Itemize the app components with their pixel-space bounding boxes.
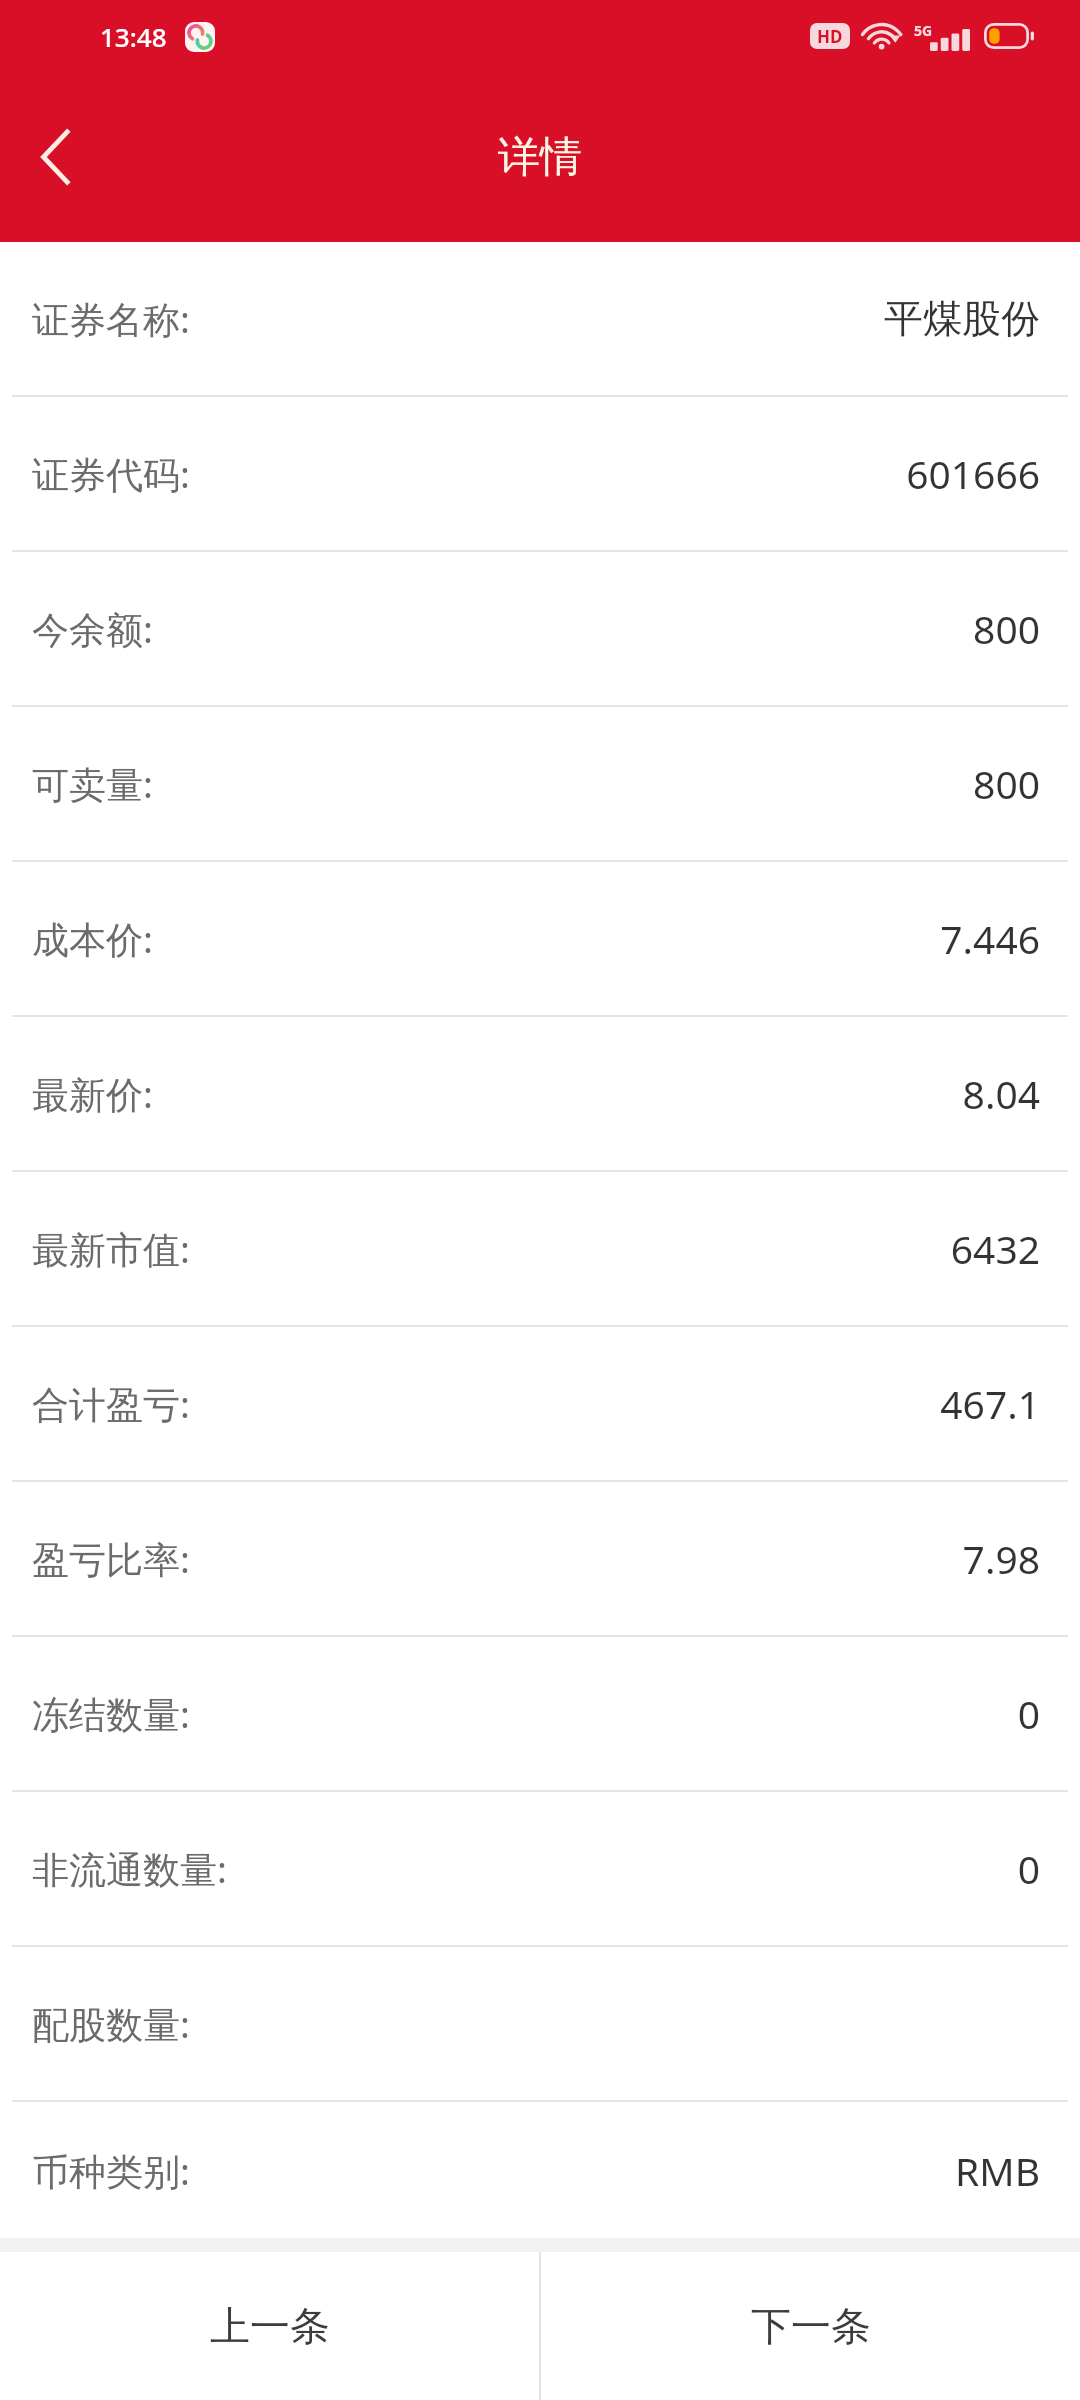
staticText: 非流通数量: bbox=[32, 1843, 227, 1894]
staticText: 13:48 bbox=[100, 19, 167, 54]
staticText: 成本价: bbox=[32, 913, 153, 964]
button[interactable]: 今余额: bbox=[0, 552, 1080, 705]
staticText: 盈亏比率: bbox=[32, 1533, 190, 1584]
button[interactable]: 盈亏比率: bbox=[0, 1482, 1080, 1635]
staticText: 467.1 bbox=[940, 1377, 1040, 1430]
button[interactable]: 证券代码: bbox=[0, 397, 1080, 550]
staticText: HD bbox=[817, 25, 843, 48]
button[interactable]: 下一条 bbox=[541, 2252, 1080, 2400]
staticText: 可卖量: bbox=[32, 758, 153, 809]
button[interactable]: 证券名称: bbox=[0, 242, 1080, 395]
staticText: 最新市值: bbox=[32, 1223, 190, 1274]
staticText: 合计盈亏: bbox=[32, 1378, 190, 1429]
button[interactable]: 可卖量: bbox=[0, 707, 1080, 860]
button[interactable]: 冻结数量: bbox=[0, 1637, 1080, 1790]
staticText: 冻结数量: bbox=[32, 1688, 190, 1739]
staticText: 下一条 bbox=[751, 2301, 871, 2351]
staticText: 证券代码: bbox=[32, 448, 190, 499]
staticText: 证券名称: bbox=[32, 293, 190, 344]
button[interactable]: 成本价: bbox=[0, 862, 1080, 1015]
staticText: 0 bbox=[1017, 1687, 1040, 1740]
staticText: 配股数量: bbox=[32, 1998, 190, 2049]
staticText: 601666 bbox=[906, 447, 1040, 500]
button[interactable]: 非流通数量: bbox=[0, 1792, 1080, 1945]
staticText: 今余额: bbox=[32, 603, 153, 654]
staticText: RMB bbox=[955, 2144, 1040, 2197]
staticText: 5G bbox=[914, 21, 933, 40]
button[interactable]: 币种类别: bbox=[0, 2102, 1080, 2238]
button[interactable]: 配股数量: bbox=[0, 1947, 1080, 2100]
button[interactable]: 最新价: bbox=[0, 1017, 1080, 1170]
staticText: 800 bbox=[973, 602, 1040, 655]
staticText: 币种类别: bbox=[32, 2145, 190, 2196]
staticText: 最新价: bbox=[32, 1068, 153, 1119]
staticText: 6432 bbox=[950, 1222, 1040, 1275]
staticText: 7.446 bbox=[940, 912, 1040, 965]
button[interactable]: 合计盈亏: bbox=[0, 1327, 1080, 1480]
button[interactable]: 上一条 bbox=[0, 2252, 539, 2400]
staticText: 800 bbox=[973, 757, 1040, 810]
staticText: 8.04 bbox=[962, 1067, 1040, 1120]
staticText: 上一条 bbox=[210, 2301, 330, 2351]
staticText: 0 bbox=[1017, 1842, 1040, 1895]
button[interactable]: 最新市值: bbox=[0, 1172, 1080, 1325]
staticText: 7.98 bbox=[962, 1532, 1040, 1585]
button[interactable]: Back bbox=[0, 102, 110, 212]
staticText: 平煤股份 bbox=[884, 294, 1040, 343]
staticText: 详情 bbox=[498, 131, 582, 184]
